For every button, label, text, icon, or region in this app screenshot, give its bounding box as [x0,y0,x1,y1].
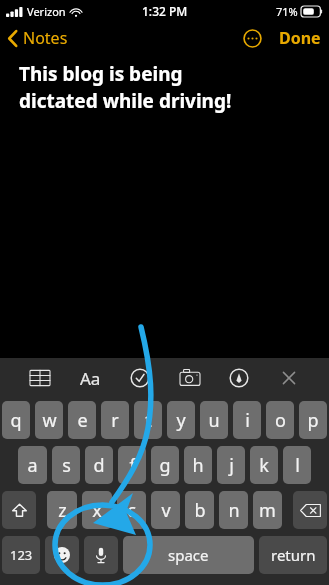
staticText: space [168,545,209,565]
staticText: 1:32 PM [142,3,188,19]
button[interactable]: x [82,491,112,529]
staticText: Notes [23,27,68,49]
button[interactable]: Close keyboard [275,364,303,392]
button[interactable]: l [283,446,311,484]
button[interactable]: y [167,401,195,439]
button[interactable]: f [118,446,146,484]
button[interactable]: Shift [2,491,36,529]
staticText: p [307,408,319,433]
button[interactable]: b [185,491,214,529]
button[interactable]: Table [26,364,54,392]
button[interactable]: Dictation [84,536,118,574]
staticText: a [27,453,38,478]
staticText: l [295,453,300,478]
button[interactable]: 123 [2,536,40,574]
staticText: 123 [10,546,33,564]
button[interactable]: return [259,536,327,574]
staticText: y [176,408,186,433]
staticText: x [92,498,102,523]
button[interactable]: e [68,401,96,439]
button[interactable]: u [200,401,228,439]
staticText: return [271,545,316,565]
staticText: o [275,408,286,433]
button[interactable]: z [47,491,77,529]
staticText: d [93,453,105,478]
button[interactable]: r [101,401,129,439]
staticText: q [10,408,22,433]
button[interactable]: j [217,446,245,484]
button[interactable]: v [151,491,180,529]
button[interactable]: space [123,536,254,574]
staticText: b [194,498,206,523]
button[interactable]: k [250,446,278,484]
staticText: m [259,498,276,523]
button[interactable]: n [219,491,248,529]
button[interactable]: i [233,401,261,439]
button[interactable]: Checklist [126,364,154,392]
staticText: 71% [276,4,298,19]
staticText: r [111,408,119,433]
button[interactable]: c [117,491,146,529]
button[interactable]: Aa [76,363,105,394]
staticText: Done [279,27,321,49]
button[interactable]: m [253,491,282,529]
button[interactable]: g [151,446,179,484]
staticText: Verizon [27,4,66,19]
staticText: f [129,453,136,478]
staticText: i [245,408,250,433]
button[interactable]: Notes [0,24,76,52]
staticText: z [58,498,67,523]
button[interactable]: o [266,401,294,439]
staticText: h [192,453,204,478]
button[interactable]: p [299,401,327,439]
button[interactable]: t [134,401,162,439]
button[interactable]: Delete [293,491,327,529]
staticText: t [145,408,152,433]
button[interactable]: a [18,446,47,484]
button[interactable]: h [184,446,212,484]
button[interactable]: Emoji [45,536,79,574]
button[interactable]: d [85,446,113,484]
staticText: k [259,453,269,478]
staticText: n [228,498,240,523]
button[interactable]: q [2,401,30,439]
staticText: s [62,453,71,478]
button[interactable]: Markup [225,364,253,392]
staticText: c [127,498,136,523]
staticText: Aa [80,367,101,390]
staticText: This blog is being dictated while drivin… [19,61,232,114]
staticText: j [229,453,234,478]
button[interactable]: w [35,401,63,439]
staticText: u [208,408,220,433]
staticText: g [159,453,171,478]
staticText: w [42,408,57,433]
button[interactable]: Done [271,23,329,53]
button[interactable]: More options [238,24,267,53]
button[interactable]: s [52,446,80,484]
button[interactable]: Camera [176,364,204,392]
staticText: e [77,408,88,433]
staticText: v [161,498,171,523]
